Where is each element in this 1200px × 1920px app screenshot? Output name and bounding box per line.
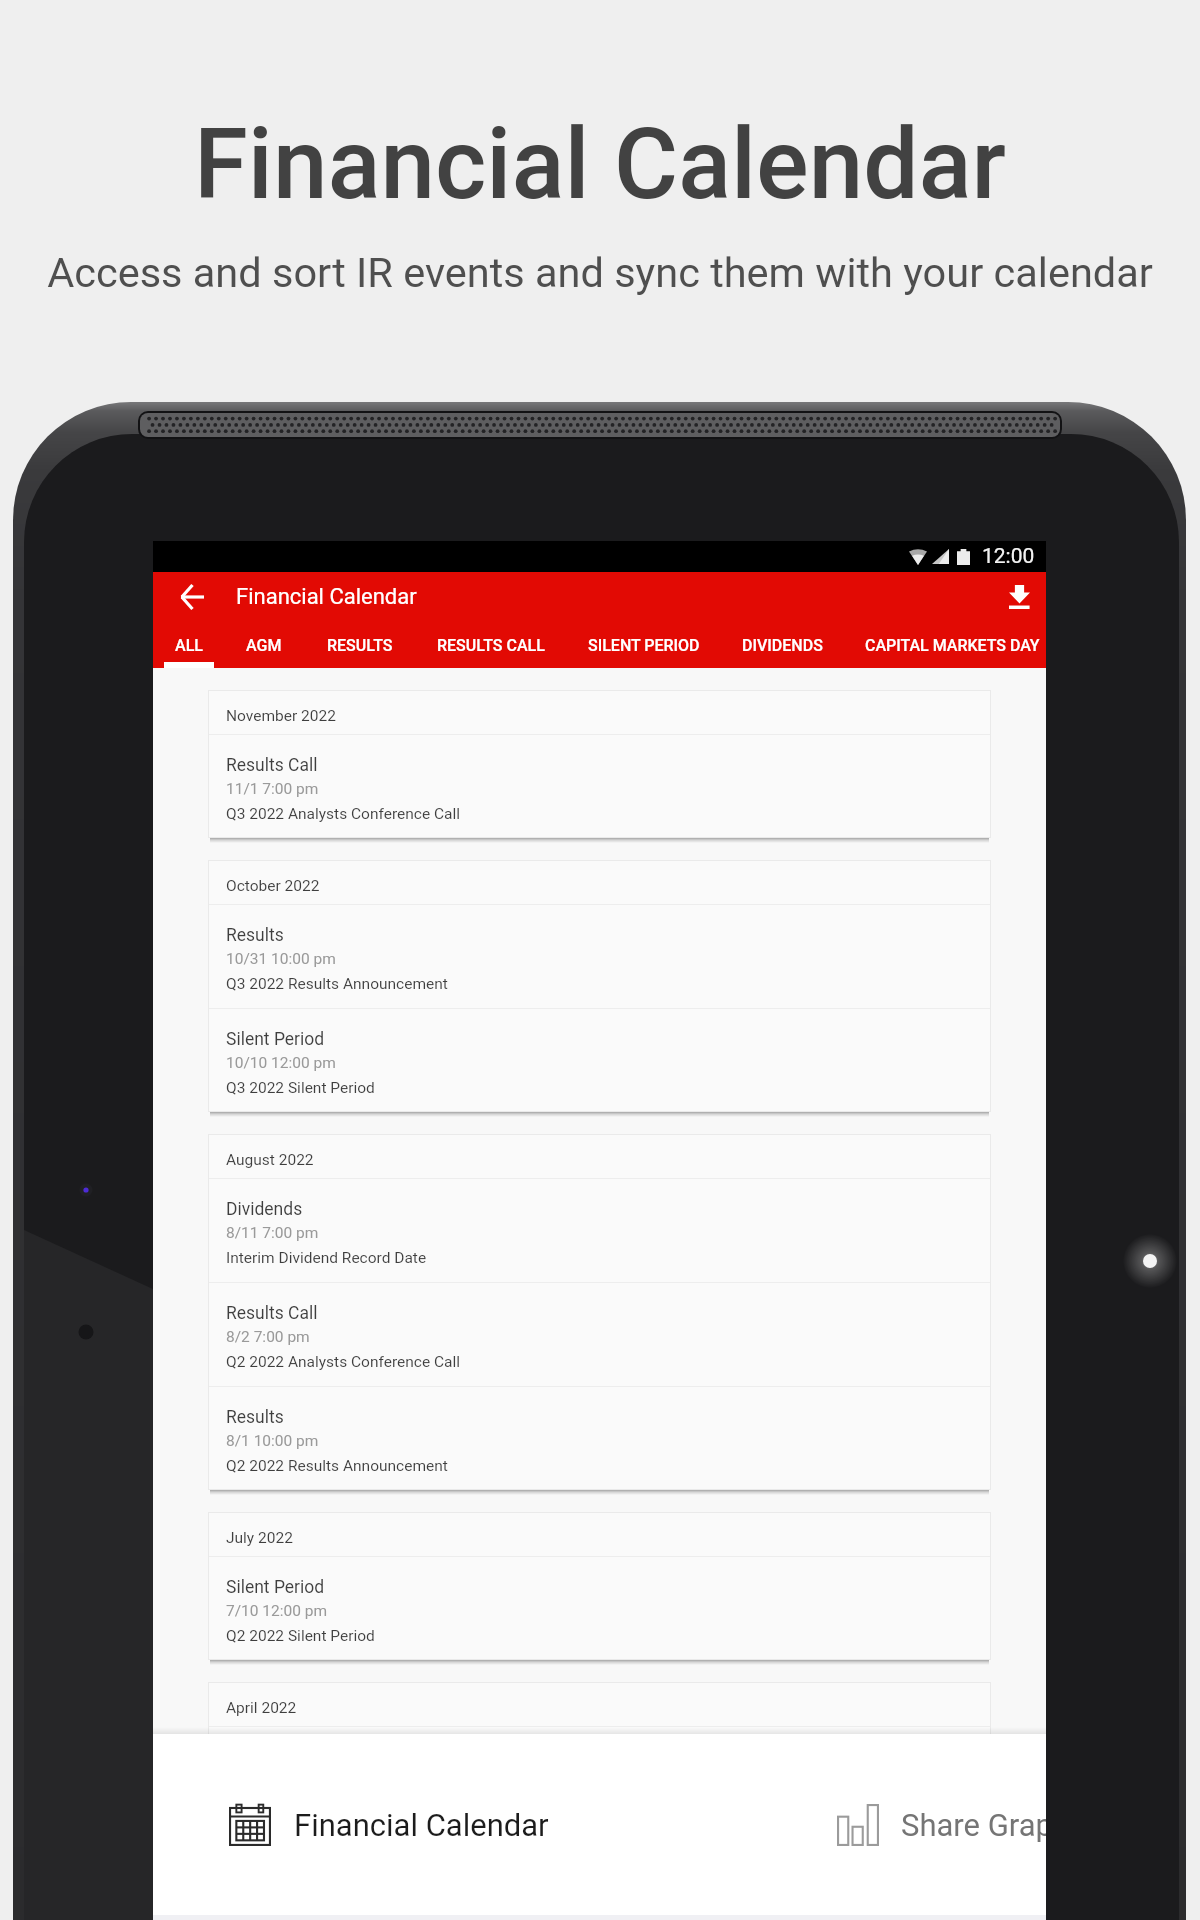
staticText: Interim Dividend Record Date (226, 1249, 427, 1267)
staticText: 10/31 10:00 pm (226, 950, 336, 968)
staticText: Dividends (226, 1199, 303, 1220)
staticText: DIVIDENDS (742, 636, 823, 655)
button[interactable]: RESULTS (304, 621, 416, 668)
staticText: October 2022 (226, 877, 320, 895)
staticText: 7/10 12:00 pm (226, 1602, 328, 1620)
staticText: 8/11 7:00 pm (226, 1224, 319, 1242)
button[interactable]: Results (208, 1387, 991, 1490)
staticText: April 2022 (226, 1699, 297, 1717)
button[interactable]: DIVIDENDS (722, 621, 842, 668)
staticText: CAPITAL MARKETS DAY (865, 636, 1040, 655)
staticText: 11/1 7:00 pm (226, 780, 319, 798)
staticText: AGM (246, 636, 282, 655)
staticText: Q3 2022 Results Announcement (226, 975, 448, 993)
staticText: August 2022 (226, 1151, 314, 1169)
button[interactable]: ALL (153, 621, 227, 668)
staticText: Results (226, 1407, 284, 1428)
staticText: Results (226, 925, 284, 946)
staticText: Financial Calendar (236, 584, 417, 610)
button[interactable]: RESULTS CALL (411, 621, 571, 668)
staticText: RESULTS (327, 636, 393, 655)
button[interactable]: Results Call (208, 735, 991, 838)
staticText: 10/10 12:00 pm (226, 1054, 336, 1072)
button[interactable]: Silent Period (208, 1557, 991, 1660)
staticText: Q2 2022 Silent Period (226, 1627, 375, 1645)
button[interactable]: Download (993, 572, 1045, 621)
staticText: 8/1 10:00 pm (226, 1432, 319, 1450)
button[interactable]: Financial Calendar (229, 1732, 549, 1918)
staticText: Results Call (226, 755, 318, 776)
staticText: RESULTS CALL (437, 636, 545, 655)
staticText: Q1 2022 Results Announcement (226, 1797, 448, 1815)
button[interactable]: Results (208, 1727, 991, 1830)
button[interactable]: Results (208, 905, 991, 1008)
staticText: Access and sort IR events and sync them … (0, 248, 1200, 297)
staticText: SILENT PERIOD (588, 636, 700, 655)
staticText: Share Graph (901, 1807, 1046, 1843)
button[interactable]: AGM (219, 621, 309, 668)
button[interactable]: Back (166, 572, 218, 621)
button[interactable]: Silent Period (208, 1009, 991, 1112)
staticText: Q3 2022 Analysts Conference Call (226, 805, 461, 823)
staticText: Silent Period (226, 1577, 325, 1598)
staticText: Silent Period (226, 1029, 325, 1050)
staticText: 12:00 (982, 544, 1035, 569)
staticText: Results Call (226, 1303, 318, 1324)
staticText: Financial Calendar (294, 1807, 549, 1843)
staticText: Q2 2022 Analysts Conference Call (226, 1353, 461, 1371)
staticText: July 2022 (226, 1529, 293, 1547)
button[interactable]: Dividends (208, 1179, 991, 1282)
button[interactable]: Share Graph (837, 1732, 1046, 1918)
staticText: November 2022 (226, 707, 336, 725)
staticText: ALL (175, 636, 203, 655)
button[interactable]: CAPITAL MARKETS DAY (844, 621, 1046, 668)
staticText: Financial Calendar (0, 107, 1200, 222)
staticText: Q2 2022 Results Announcement (226, 1457, 448, 1475)
button[interactable]: Results Call (208, 1283, 991, 1386)
button[interactable]: SILENT PERIOD (564, 621, 724, 668)
staticText: 8/2 7:00 pm (226, 1328, 310, 1346)
staticText: Q3 2022 Silent Period (226, 1079, 375, 1097)
